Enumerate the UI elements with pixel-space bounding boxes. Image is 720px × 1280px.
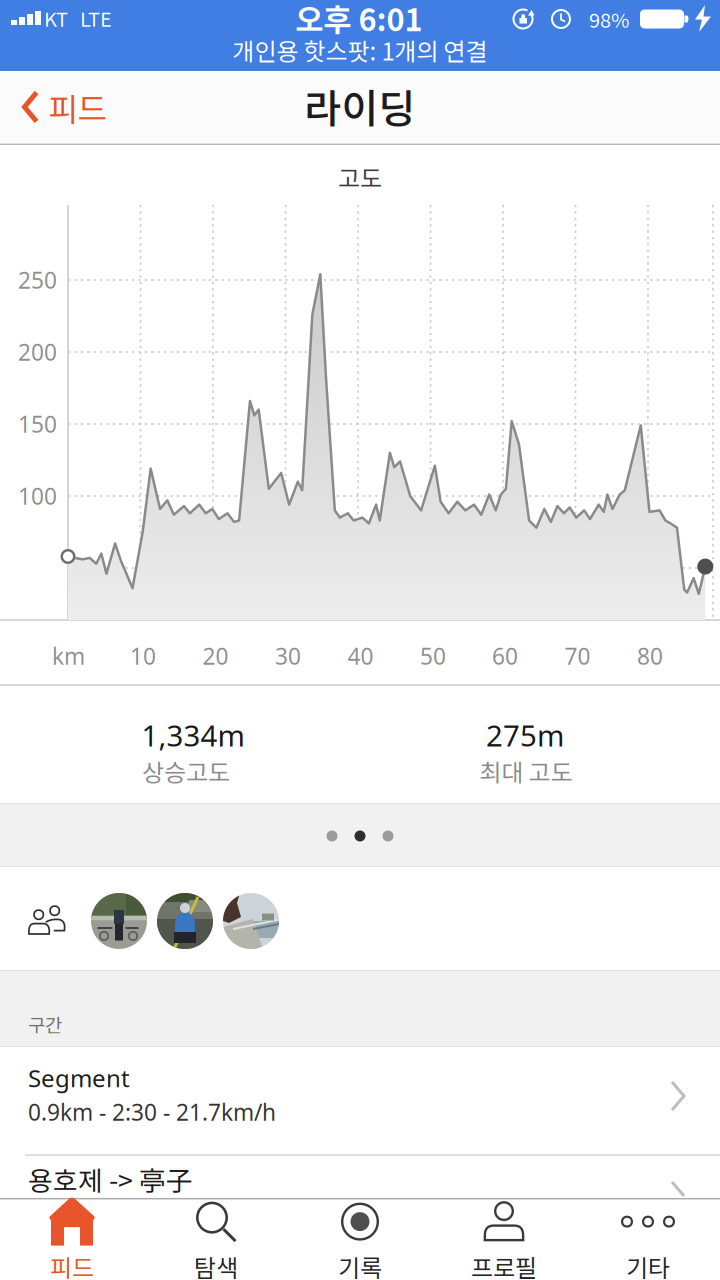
button[interactable]: 용호제 -> 亭子 bbox=[0, 1156, 720, 1198]
staticText: 275m bbox=[486, 715, 564, 754]
staticText: 탐색 bbox=[194, 1249, 238, 1280]
button[interactable]: 탐색 bbox=[144, 1201, 288, 1280]
staticText: 0.9km - 2:30 - 21.7km/h bbox=[28, 1097, 276, 1127]
staticText: 1,334m bbox=[141, 715, 244, 754]
staticText: 구간 bbox=[28, 1010, 62, 1037]
button[interactable]: 피드 bbox=[0, 1201, 144, 1280]
button[interactable]: 참가자 1 bbox=[91, 893, 147, 949]
staticText: 70 bbox=[564, 641, 590, 671]
staticText: 오후 6:01 bbox=[295, 0, 422, 40]
staticText: 피드 bbox=[48, 84, 106, 130]
staticText: 80 bbox=[637, 641, 663, 671]
staticText: 기록 bbox=[338, 1249, 382, 1280]
button[interactable]: 페이지 1 bbox=[326, 830, 337, 841]
button[interactable]: 참가자 2 bbox=[157, 893, 213, 949]
staticText: 20 bbox=[202, 641, 228, 671]
staticText: 150 bbox=[18, 409, 57, 439]
staticText: 고도 bbox=[338, 160, 382, 194]
button[interactable]: 피드 bbox=[21, 84, 106, 130]
staticText: 개인용 핫스팟: 1개의 연결 bbox=[232, 33, 487, 67]
staticText: 상승고도 bbox=[142, 754, 230, 788]
button[interactable]: 페이지 2 bbox=[354, 830, 365, 841]
button[interactable]: 기타 bbox=[576, 1201, 720, 1280]
staticText: 200 bbox=[18, 337, 57, 367]
staticText: KT bbox=[44, 3, 68, 32]
staticText: 250 bbox=[18, 265, 57, 295]
button[interactable]: 페이지 3 bbox=[382, 830, 393, 841]
button[interactable]: Segment bbox=[0, 1047, 720, 1155]
staticText: 100 bbox=[18, 481, 57, 511]
staticText: km bbox=[52, 641, 85, 671]
staticText: 용호제 -> 亭子 bbox=[28, 1160, 193, 1198]
staticText: 30 bbox=[275, 641, 301, 671]
button[interactable]: 기록 bbox=[288, 1201, 432, 1280]
button[interactable]: 참가자 3 bbox=[223, 893, 279, 949]
staticText: 피드 bbox=[50, 1249, 94, 1280]
staticText: 라이딩 bbox=[304, 77, 415, 135]
staticText: 기타 bbox=[626, 1249, 670, 1280]
staticText: LTE bbox=[80, 3, 112, 32]
staticText: 98% bbox=[589, 4, 629, 33]
button[interactable]: 프로필 bbox=[432, 1201, 576, 1280]
staticText: 10 bbox=[130, 641, 156, 671]
staticText: 60 bbox=[492, 641, 518, 671]
staticText: 40 bbox=[347, 641, 373, 671]
staticText: 프로필 bbox=[471, 1249, 537, 1280]
staticText: Segment bbox=[28, 1062, 130, 1094]
staticText: 최대 고도 bbox=[479, 754, 572, 788]
staticText: 50 bbox=[420, 641, 446, 671]
